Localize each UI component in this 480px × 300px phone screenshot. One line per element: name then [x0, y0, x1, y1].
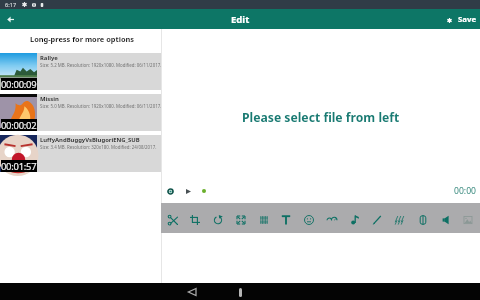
button[interactable]: Rotate [207, 207, 229, 229]
staticText: Save [458, 14, 477, 25]
staticText: 00:00 [454, 185, 476, 197]
staticText: Size: 5.0 MB. Resolution: 1920x1080. Mod… [40, 103, 161, 109]
staticText: 6:17 [5, 1, 17, 9]
staticText: LuffyAndBuggyVsBlugoriENG_SUB [40, 136, 140, 144]
button[interactable]: Play [181, 184, 195, 198]
button[interactable]: Split [412, 207, 434, 229]
button[interactable]: Volume [435, 207, 457, 229]
button[interactable]: Resize [230, 207, 252, 229]
staticText: Please select file from left [242, 109, 400, 126]
button[interactable]: Home [233, 285, 247, 299]
button[interactable]: Marker [197, 184, 211, 198]
button[interactable]: Cut [162, 207, 184, 229]
staticText: Size: 5.2 MB. Resolution: 1920x1080. Mod… [40, 62, 161, 68]
staticText: 00:00:02 [1, 119, 37, 131]
button[interactable]: Crop [184, 207, 206, 229]
staticText: Missin [40, 95, 59, 103]
staticText: Edit [231, 13, 250, 26]
button[interactable]: Filter [389, 207, 411, 229]
button[interactable]: Frames [253, 207, 275, 229]
button[interactable]: Back [188, 284, 204, 300]
button[interactable]: Audio [344, 207, 366, 229]
button[interactable]: 00:00:02 [0, 94, 161, 131]
button[interactable]: 00:00:09 [0, 53, 161, 90]
staticText: Rallye [40, 54, 58, 62]
staticText: 00:00:09 [1, 78, 37, 90]
button[interactable]: Save [457, 12, 478, 27]
button[interactable]: 00:01:57 [0, 135, 161, 172]
button[interactable]: Record [163, 184, 177, 198]
button[interactable]: Sticker [298, 207, 320, 229]
button[interactable]: Draw [366, 207, 388, 229]
button[interactable]: Settings [442, 13, 456, 27]
button[interactable]: Speed [321, 207, 343, 229]
staticText: 00:01:57 [1, 160, 37, 172]
button[interactable]: Image [457, 207, 479, 229]
staticText: Size: 3.4 MB. Resolution: 320x180. Modif… [40, 144, 157, 150]
button[interactable]: Back [2, 11, 19, 28]
staticText: Long-press for more options [30, 34, 135, 44]
button[interactable]: Text [275, 207, 297, 229]
